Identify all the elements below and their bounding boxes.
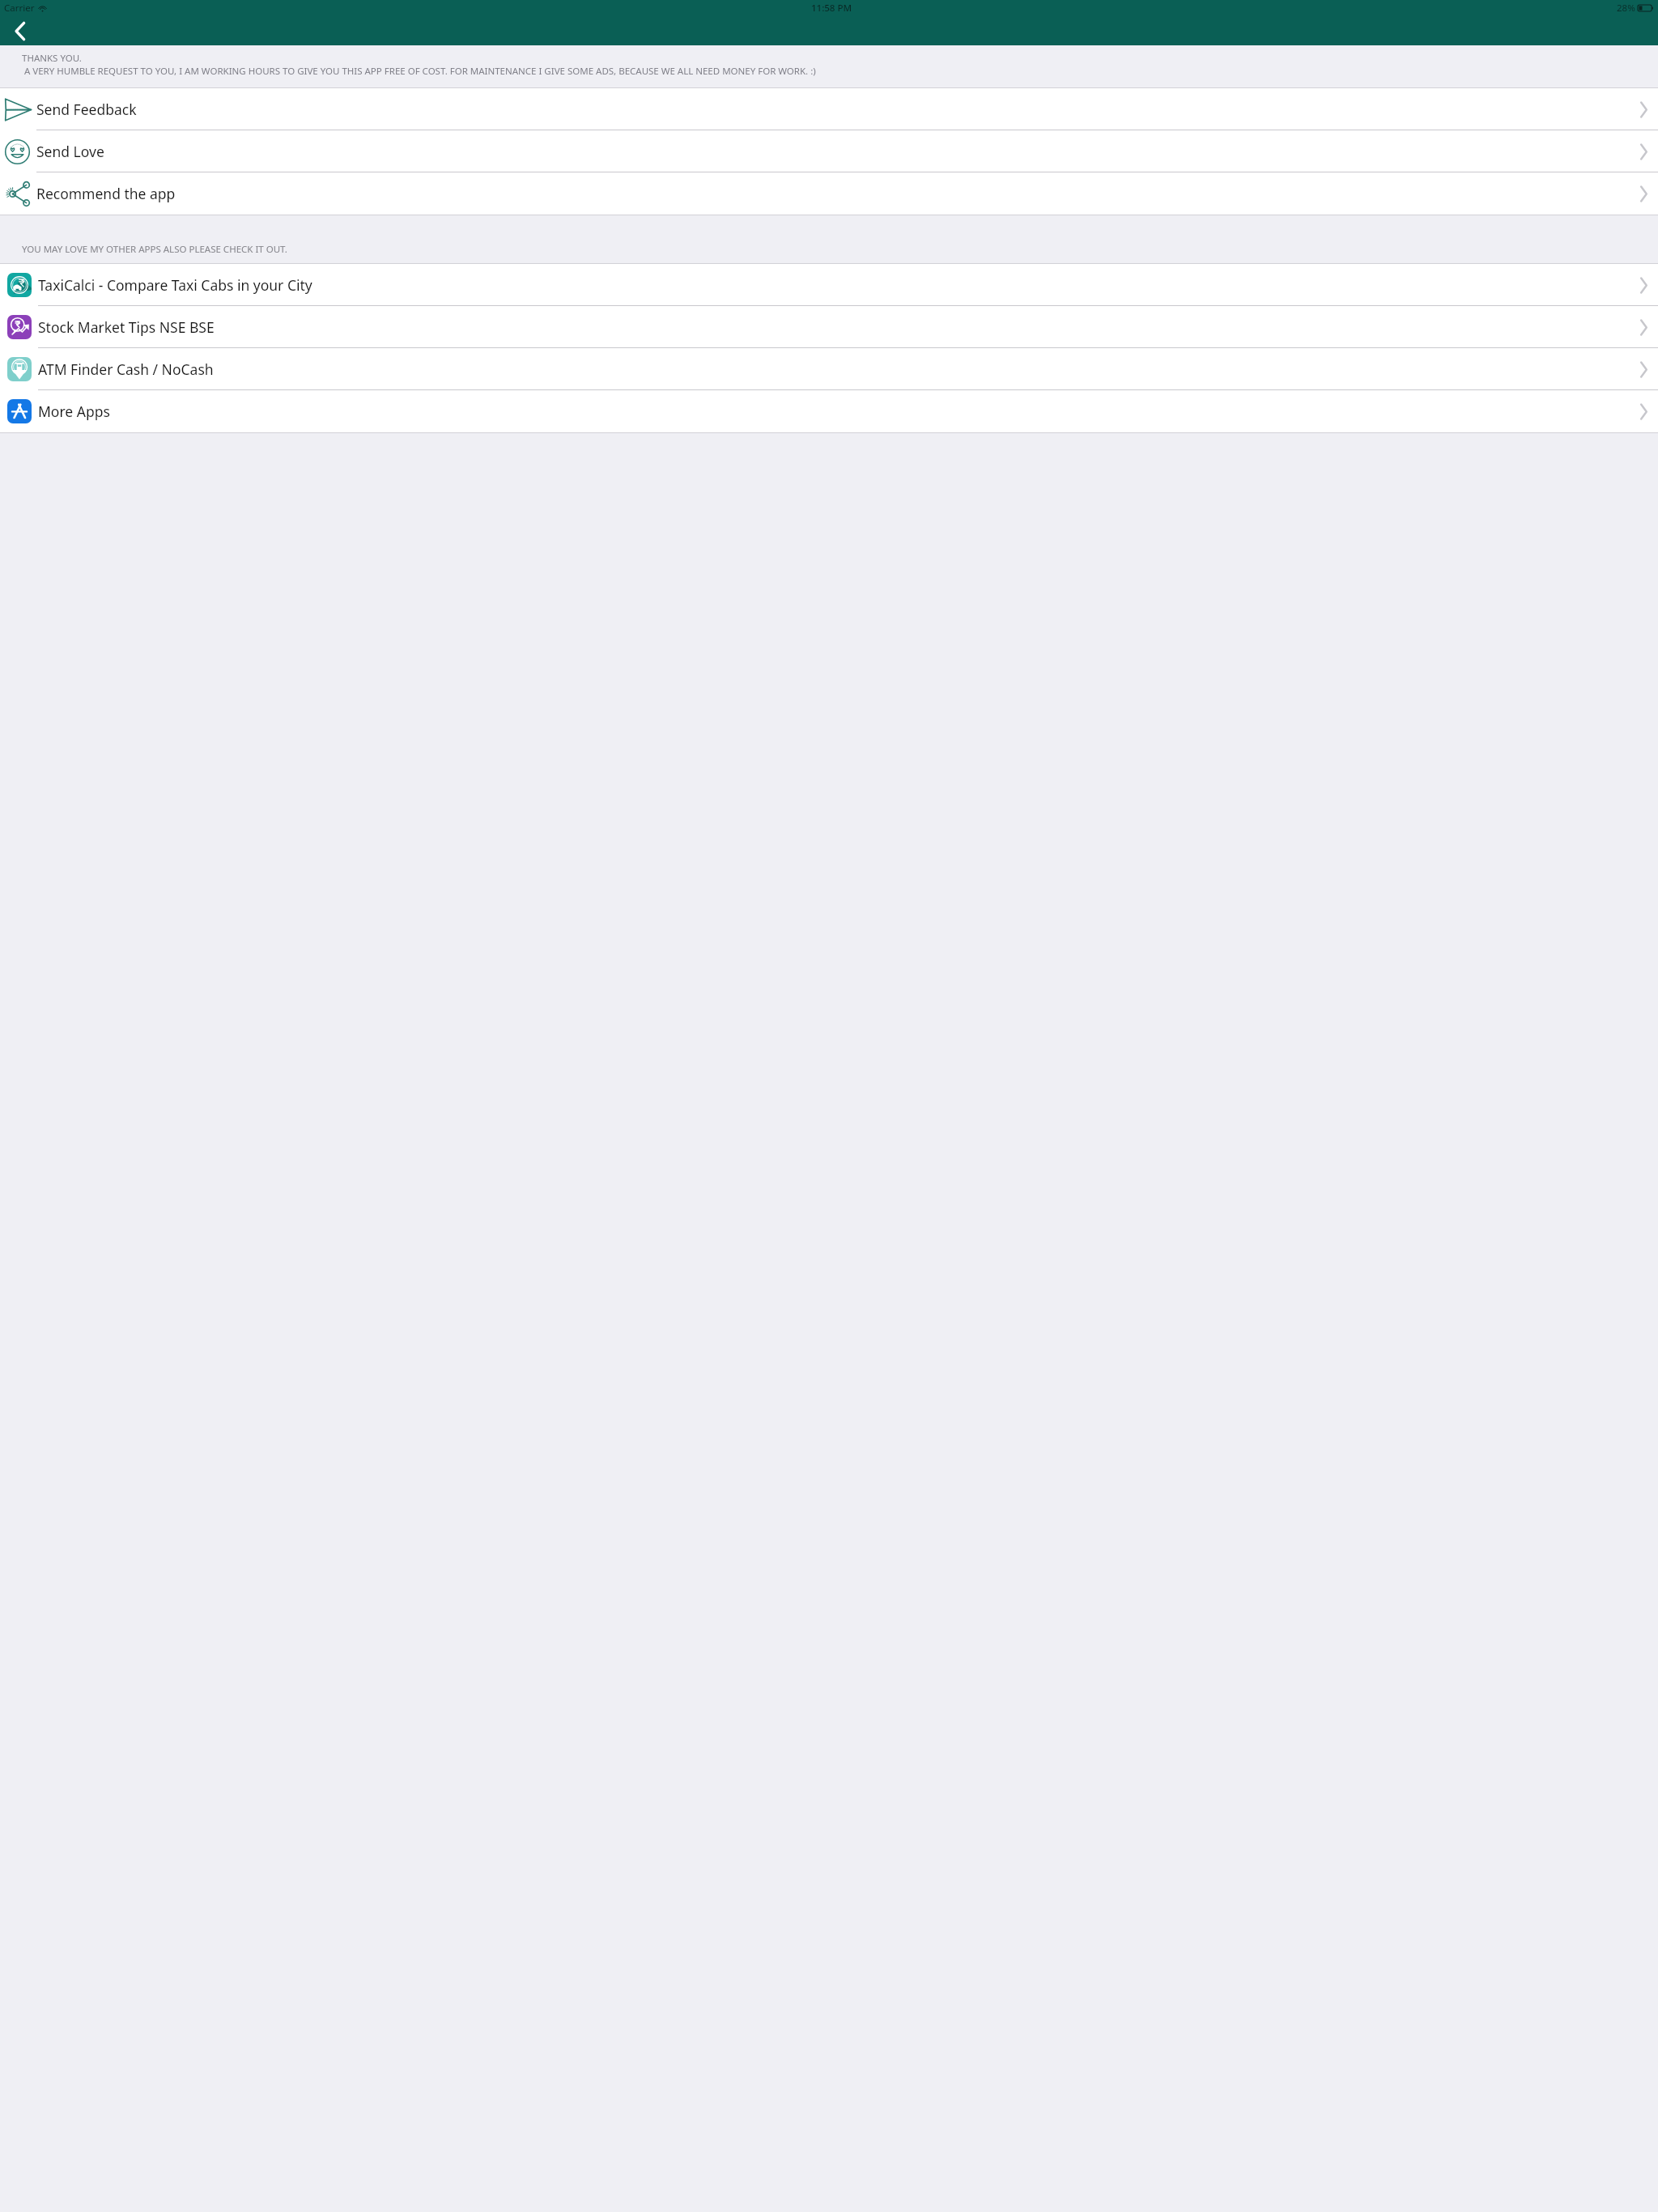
- staticText: THANKS YOU.: [22, 52, 82, 65]
- staticText: Recommend the app: [36, 184, 176, 203]
- button[interactable]: More Apps: [0, 390, 1658, 432]
- button[interactable]: Stock Market Tips NSE BSE: [0, 306, 1658, 348]
- staticText: A VERY HUMBLE REQUEST TO YOU, I AM WORKI…: [22, 65, 816, 78]
- staticText: 28%: [1617, 2, 1635, 15]
- staticText: YOU MAY LOVE MY OTHER APPS ALSO PLEASE C…: [22, 243, 287, 256]
- button[interactable]: TaxiCalci - Compare Taxi Cabs in your Ci…: [0, 264, 1658, 306]
- button[interactable]: ATM Finder Cash / NoCash: [0, 348, 1658, 390]
- staticText: 11:58 PM: [811, 2, 852, 15]
- staticText: Carrier: [4, 2, 35, 15]
- button[interactable]: Send Love: [0, 130, 1658, 172]
- staticText: Stock Market Tips NSE BSE: [38, 317, 215, 337]
- staticText: More Apps: [38, 402, 110, 421]
- staticText: ATM Finder Cash / NoCash: [38, 359, 214, 379]
- staticText: TaxiCalci - Compare Taxi Cabs in your Ci…: [38, 275, 312, 295]
- button[interactable]: Recommend the app: [0, 172, 1658, 215]
- staticText: Send Feedback: [36, 100, 137, 119]
- button[interactable]: Back: [2, 16, 37, 45]
- button[interactable]: Send Feedback: [0, 88, 1658, 130]
- staticText: Send Love: [36, 142, 104, 161]
